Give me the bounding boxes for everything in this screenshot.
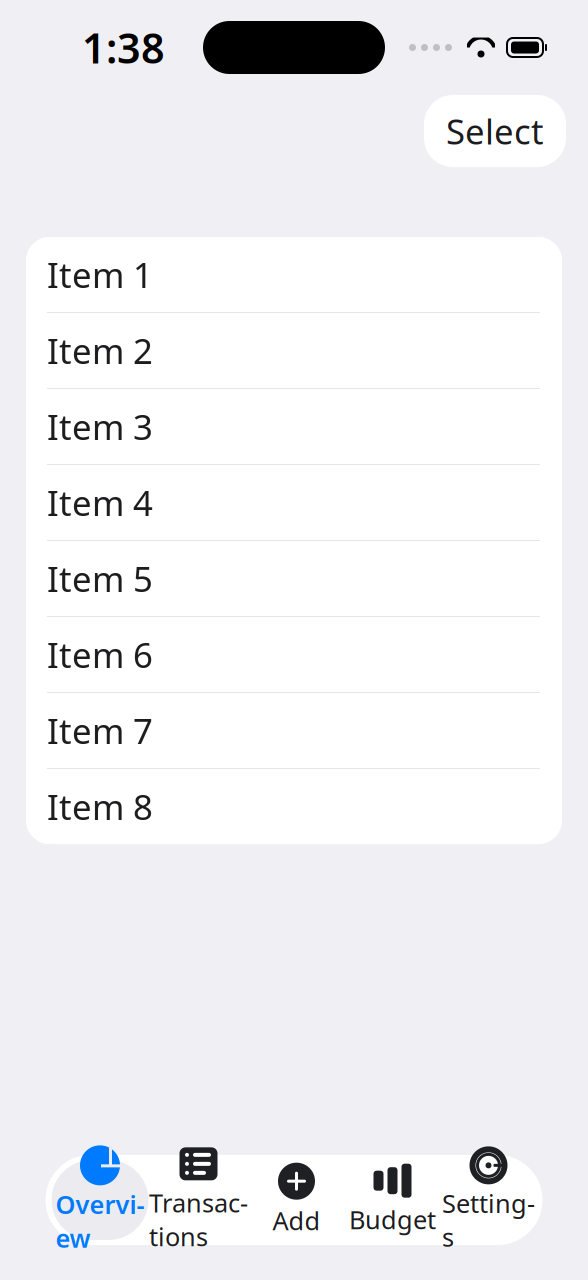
staticText: Item 8 bbox=[47, 783, 153, 829]
button[interactable]: Item 5 bbox=[26, 541, 562, 617]
button[interactable]: Add bbox=[248, 1160, 344, 1240]
staticText: Select bbox=[446, 108, 544, 154]
staticText: Overview bbox=[55, 1187, 144, 1255]
button[interactable]: Item 1 bbox=[26, 237, 562, 313]
button[interactable]: Transactions bbox=[148, 1160, 248, 1240]
staticText: 1:38 bbox=[82, 20, 165, 75]
button[interactable]: Item 7 bbox=[26, 693, 562, 769]
staticText: Item 3 bbox=[47, 403, 153, 449]
staticText: Settings bbox=[442, 1186, 535, 1254]
button[interactable]: Item 4 bbox=[26, 465, 562, 541]
staticText: Transactions bbox=[149, 1186, 248, 1253]
staticText: Item 5 bbox=[47, 555, 153, 601]
staticText: Item 6 bbox=[47, 631, 153, 677]
button[interactable]: Item 3 bbox=[26, 389, 562, 465]
button[interactable]: Settings bbox=[440, 1160, 536, 1240]
button[interactable]: Item 6 bbox=[26, 617, 562, 693]
staticText: Item 2 bbox=[47, 327, 153, 373]
button[interactable]: Item 2 bbox=[26, 313, 562, 389]
button[interactable]: Select bbox=[424, 95, 566, 167]
button[interactable]: Budget bbox=[344, 1160, 440, 1240]
staticText: Item 1 bbox=[47, 251, 153, 297]
button[interactable]: Item 8 bbox=[26, 769, 562, 844]
staticText: Add bbox=[272, 1204, 320, 1237]
staticText: Budget bbox=[349, 1203, 436, 1236]
button[interactable]: Overview bbox=[51, 1160, 148, 1240]
staticText: Item 7 bbox=[47, 707, 153, 753]
staticText: Item 4 bbox=[47, 479, 153, 525]
